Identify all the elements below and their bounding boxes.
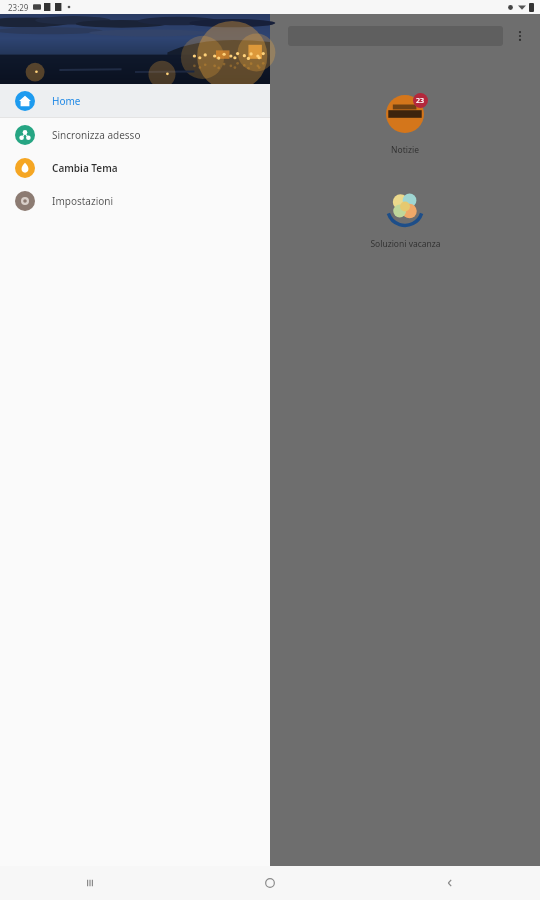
button[interactable]: Sincronizza adesso — [0, 118, 270, 151]
button[interactable]: Non lette — [30, 56, 145, 82]
staticText: 23 — [416, 96, 425, 106]
button[interactable]: Cambia Tema — [0, 151, 270, 184]
button[interactable]: 23 — [270, 92, 540, 174]
staticText: 23:29 — [8, 2, 29, 13]
staticText: Notizie — [391, 144, 419, 156]
staticText: Soluzioni vacanza — [370, 238, 441, 250]
button[interactable]: Altre opzioni — [508, 24, 532, 48]
staticText: Cambia Tema — [52, 161, 118, 175]
button[interactable]: Salvati — [145, 56, 260, 82]
staticText: Salvati — [145, 63, 175, 76]
button[interactable]: Home — [0, 84, 270, 117]
button[interactable]: Soluzioni vacanza — [270, 186, 540, 268]
button[interactable]: Salvati — [18, 92, 270, 174]
button[interactable]: Indietro — [360, 866, 540, 900]
button[interactable]: Recenti — [0, 866, 180, 900]
staticText: Impostazioni — [52, 194, 114, 208]
staticText: Non lette — [30, 63, 72, 76]
staticText: Sincronizza adesso — [52, 128, 141, 142]
button[interactable]: Impostazioni — [0, 184, 270, 217]
button[interactable]: Home — [180, 866, 360, 900]
button[interactable]: Su Twitter — [18, 186, 270, 268]
staticText: Home — [52, 94, 81, 108]
